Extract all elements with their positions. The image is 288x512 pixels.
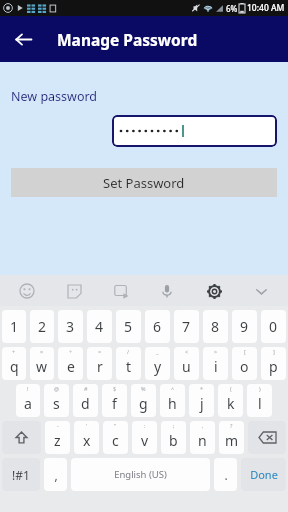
button[interactable]: Voice input	[154, 278, 180, 304]
button[interactable]: (	[218, 384, 243, 417]
button[interactable]: English (US)	[71, 458, 210, 491]
button[interactable]: 5	[116, 310, 141, 343]
button[interactable]: 8	[203, 310, 228, 343]
button[interactable]: Hide keyboard	[248, 278, 274, 304]
button[interactable]: !#1	[2, 458, 40, 491]
staticText: English (US)	[114, 468, 167, 481]
staticText: u	[182, 357, 191, 376]
staticText: +	[12, 348, 16, 355]
button[interactable]: /	[116, 347, 141, 380]
button[interactable]: #	[73, 384, 98, 417]
staticText: 1	[10, 317, 19, 336]
button[interactable]: >	[203, 347, 228, 380]
staticText: 2	[38, 317, 47, 336]
button[interactable]: Settings	[201, 278, 227, 304]
button[interactable]	[112, 115, 277, 147]
staticText: "	[114, 422, 117, 429]
staticText: t	[126, 357, 132, 376]
button[interactable]: Stickers	[61, 278, 87, 304]
staticText: 0	[269, 317, 278, 336]
staticText: ^	[171, 385, 175, 392]
staticText: 10:40 AM	[247, 2, 285, 14]
button[interactable]: 7	[174, 310, 199, 343]
staticText: Manage Password	[57, 29, 198, 50]
staticText: s	[53, 394, 60, 413]
button[interactable]: [	[232, 347, 257, 380]
button[interactable]: $	[102, 384, 127, 417]
button[interactable]: ?	[219, 421, 244, 454]
button[interactable]: :	[132, 421, 157, 454]
button[interactable]: 1	[2, 310, 26, 343]
button[interactable]: )	[247, 384, 272, 417]
button[interactable]: 2	[30, 310, 54, 343]
staticText: 3	[66, 317, 75, 336]
staticText: #	[84, 385, 88, 392]
staticText: 7	[182, 317, 191, 336]
button[interactable]: 9	[232, 310, 257, 343]
button[interactable]: ,	[190, 421, 215, 454]
button[interactable]: <	[174, 347, 199, 380]
button[interactable]: 6	[145, 310, 170, 343]
button[interactable]: 3	[58, 310, 83, 343]
button[interactable]: ^	[160, 384, 185, 417]
button[interactable]: Emoji	[14, 278, 40, 304]
button[interactable]: +	[2, 347, 26, 380]
button[interactable]: .	[214, 458, 237, 491]
staticText: l	[258, 394, 262, 413]
button[interactable]: "	[103, 421, 128, 454]
button[interactable]: ÷	[58, 347, 83, 380]
staticText: %	[141, 385, 146, 392]
staticText: 4	[95, 317, 104, 336]
staticText: >	[214, 348, 218, 355]
staticText: 6	[153, 317, 162, 336]
button[interactable]: ]	[261, 347, 286, 380]
staticText: ×	[40, 348, 44, 355]
staticText: k	[227, 394, 235, 413]
staticText: !#1	[12, 467, 30, 483]
staticText: ;	[173, 422, 175, 429]
staticText: 6%	[226, 3, 238, 14]
button[interactable]: =	[87, 347, 112, 380]
staticText: f	[112, 394, 117, 413]
button[interactable]: 0	[261, 310, 286, 343]
button[interactable]: _	[145, 347, 170, 380]
button[interactable]: 4	[87, 310, 112, 343]
staticText: (	[230, 385, 232, 392]
staticText: Done	[250, 467, 278, 482]
staticText: ]	[273, 348, 275, 355]
button[interactable]: ,	[44, 458, 67, 491]
button[interactable]: ;	[161, 421, 186, 454]
button[interactable]: Done	[241, 458, 286, 491]
button[interactable]: Back	[6, 22, 40, 56]
staticText: 5	[124, 317, 133, 336]
staticText: Set Password	[103, 174, 185, 192]
button[interactable]: '	[74, 421, 99, 454]
button[interactable]: Backspace	[248, 421, 286, 454]
button[interactable]: ×	[30, 347, 54, 380]
button[interactable]: *	[189, 384, 214, 417]
staticText: !	[27, 385, 29, 392]
staticText: w	[36, 357, 48, 376]
staticText: j	[200, 394, 204, 413]
staticText: p	[269, 357, 278, 376]
staticText: _	[156, 348, 159, 355]
button[interactable]: @	[44, 384, 69, 417]
staticText: h	[168, 394, 177, 413]
button[interactable]: !	[16, 384, 40, 417]
staticText: c	[112, 431, 119, 450]
button[interactable]: Set Password	[11, 168, 277, 197]
staticText: b	[169, 431, 178, 450]
button[interactable]: GIF	[108, 278, 134, 304]
button[interactable]: Shift	[2, 421, 41, 454]
staticText: n	[198, 431, 207, 450]
button[interactable]: -	[45, 421, 70, 454]
staticText: *	[200, 385, 204, 392]
staticText: /	[127, 348, 130, 355]
staticText: <	[185, 348, 189, 355]
staticText: ,	[54, 467, 58, 483]
staticText: ÷	[69, 348, 73, 355]
staticText: x	[83, 431, 91, 450]
button[interactable]: %	[131, 384, 156, 417]
staticText: ,	[202, 422, 204, 429]
staticText: a	[24, 394, 32, 413]
